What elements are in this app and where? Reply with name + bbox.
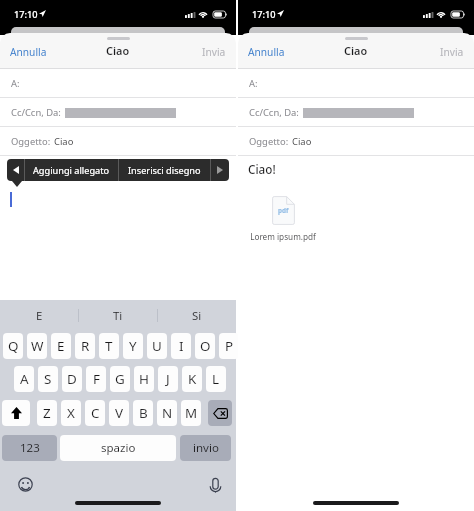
button[interactable]: Ti: [79, 300, 157, 331]
button[interactable]: O: [195, 333, 215, 359]
staticText: M: [185, 404, 198, 422]
staticText: A: [20, 370, 29, 388]
staticText: Oggetto:: [11, 135, 51, 148]
button[interactable]: P: [219, 333, 239, 359]
button[interactable]: Maiuscolo: [2, 400, 30, 426]
button[interactable]: U: [147, 333, 167, 359]
button[interactable]: spazio: [60, 435, 176, 461]
button[interactable]: J: [158, 366, 178, 392]
staticText: Inserisci disegno: [128, 164, 201, 177]
staticText: U: [152, 337, 162, 355]
button[interactable]: F: [86, 366, 106, 392]
staticText: K: [188, 370, 197, 388]
button[interactable]: Invia: [202, 33, 236, 59]
button[interactable]: E: [51, 333, 71, 359]
staticText: Ti: [113, 308, 123, 324]
staticText: Annulla: [10, 45, 47, 59]
button[interactable]: L: [206, 366, 226, 392]
staticText: V: [115, 404, 124, 422]
button[interactable]: I: [171, 333, 191, 359]
button[interactable]: A:: [238, 69, 474, 98]
staticText: Invia: [202, 45, 226, 59]
button[interactable]: Invia: [440, 33, 474, 59]
staticText: Z: [43, 404, 51, 422]
button[interactable]: T: [99, 333, 119, 359]
button[interactable]: X: [61, 400, 81, 426]
staticText: P: [225, 337, 234, 355]
button[interactable]: pdf: [250, 196, 316, 242]
button[interactable]: W: [27, 333, 47, 359]
staticText: Annulla: [248, 45, 285, 59]
button[interactable]: E: [0, 300, 78, 331]
staticText: W: [31, 337, 44, 355]
button[interactable]: Cc/Ccn, Da:: [238, 98, 474, 127]
staticText: Lorem ipsum.pdf: [250, 231, 316, 242]
button[interactable]: R: [75, 333, 95, 359]
button[interactable]: B: [133, 400, 153, 426]
button[interactable]: A:: [0, 69, 236, 98]
button[interactable]: Annulla: [0, 33, 47, 59]
button[interactable]: N: [157, 400, 177, 426]
button[interactable]: Z: [37, 400, 57, 426]
button[interactable]: 123: [2, 435, 57, 461]
staticText: A:: [249, 77, 258, 90]
staticText: 123: [20, 440, 40, 456]
staticText: Ciao: [344, 43, 368, 58]
button[interactable]: H: [134, 366, 154, 392]
staticText: E: [36, 308, 43, 324]
staticText: L: [212, 370, 220, 388]
staticText: Ciao: [292, 135, 312, 148]
staticText: Oggetto:: [249, 135, 289, 148]
staticText: Aggiungi allegato: [33, 164, 110, 177]
button[interactable]: Cc/Ccn, Da:: [0, 98, 236, 127]
staticText: Y: [129, 337, 137, 355]
staticText: Q: [8, 337, 19, 355]
button[interactable]: Oggetto:: [238, 127, 474, 156]
button[interactable]: Cancella: [208, 400, 232, 426]
staticText: Cc/Ccn, Da:: [11, 106, 61, 119]
staticText: 17:10: [14, 8, 38, 21]
staticText: A:: [11, 77, 20, 90]
button[interactable]: Successivo: [211, 159, 229, 181]
staticText: T: [105, 337, 113, 355]
button[interactable]: Q: [3, 333, 23, 359]
staticText: 17:10: [252, 8, 276, 21]
staticText: spazio: [101, 440, 136, 456]
staticText: E: [57, 337, 65, 355]
staticText: Si: [192, 308, 202, 324]
staticText: pdf: [278, 206, 289, 215]
button[interactable]: M: [181, 400, 201, 426]
button[interactable]: Dettatura: [208, 476, 223, 493]
staticText: R: [81, 337, 90, 355]
button[interactable]: Si: [158, 300, 236, 331]
staticText: F: [93, 370, 100, 388]
button[interactable]: A: [14, 366, 34, 392]
button[interactable]: Aggiungi allegato: [25, 159, 118, 181]
staticText: H: [139, 370, 149, 388]
button[interactable]: invio: [180, 435, 231, 461]
button[interactable]: S: [38, 366, 58, 392]
staticText: Invia: [440, 45, 464, 59]
staticText: S: [44, 370, 52, 388]
staticText: C: [91, 404, 100, 422]
button[interactable]: Annulla: [238, 33, 285, 59]
button[interactable]: Oggetto:: [0, 127, 236, 156]
button[interactable]: Precedente: [7, 159, 24, 181]
staticText: D: [67, 370, 77, 388]
button[interactable]: G: [110, 366, 130, 392]
staticText: X: [67, 404, 75, 422]
staticText: N: [162, 404, 173, 422]
button[interactable]: Y: [123, 333, 143, 359]
button[interactable]: K: [182, 366, 202, 392]
staticText: J: [166, 370, 170, 388]
staticText: G: [115, 370, 125, 388]
button[interactable]: V: [109, 400, 129, 426]
button[interactable]: D: [62, 366, 82, 392]
button[interactable]: C: [85, 400, 105, 426]
staticText: Ciao: [106, 43, 130, 58]
button[interactable]: Inserisci disegno: [119, 159, 210, 181]
staticText: O: [200, 337, 211, 355]
staticText: Ciao: [54, 135, 74, 148]
button[interactable]: Emoji: [18, 477, 33, 492]
staticText: Ciao!: [248, 161, 276, 177]
